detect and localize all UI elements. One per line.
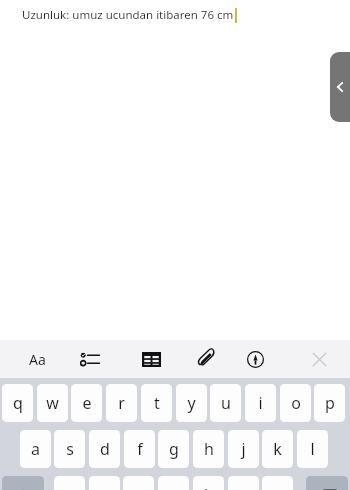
staticText: a [31,438,40,460]
button[interactable]: Shift [2,476,44,490]
button[interactable]: d [89,430,120,468]
staticText: o [291,392,301,414]
button[interactable]: n [228,476,259,490]
button[interactable]: Table [136,344,166,374]
button[interactable]: Markup [240,344,270,374]
button[interactable]: x [89,476,120,490]
staticText: f [137,438,143,460]
staticText: b [204,484,214,490]
button[interactable]: o [280,384,311,422]
button[interactable]: p [314,384,345,422]
staticText: h [204,438,214,460]
button[interactable]: Close [304,344,334,374]
button[interactable]: a [20,430,51,468]
button[interactable]: u [210,384,241,422]
staticText: Aa [29,350,46,369]
staticText: g [169,438,179,460]
button[interactable]: i [245,384,276,422]
staticText: j [241,438,246,460]
staticText: p [325,392,335,414]
button[interactable]: k [262,430,293,468]
staticText: w [46,392,59,414]
staticText: t [154,392,160,414]
button[interactable]: r [106,384,137,422]
button[interactable]: h [193,430,224,468]
button[interactable]: Attach [190,344,220,374]
button[interactable]: g [158,430,189,468]
button[interactable]: b [193,476,224,490]
staticText: d [100,438,110,460]
staticText: r [118,392,125,414]
button[interactable]: m [262,476,293,490]
staticText: e [82,392,92,414]
staticText: k [273,438,282,460]
button[interactable]: y [176,384,207,422]
button[interactable]: z [54,476,85,490]
button[interactable]: s [54,430,85,468]
button[interactable]: f [124,430,155,468]
button[interactable]: w [37,384,68,422]
staticText: s [66,438,74,460]
staticText: Uzunluk: umuz ucundan itibaren 76 cm [22,7,234,23]
button[interactable]: Backspace [306,476,348,490]
button[interactable]: q [2,384,33,422]
button[interactable]: l [297,430,328,468]
staticText: q [13,392,23,414]
button[interactable]: j [228,430,259,468]
staticText: y [187,392,196,414]
staticText: i [258,392,263,414]
button[interactable]: e [71,384,102,422]
button[interactable]: v [158,476,189,490]
button[interactable]: c [123,476,154,490]
staticText: u [221,392,231,414]
staticText: l [310,438,315,460]
button[interactable]: Text format [22,344,52,374]
button[interactable]: Show sidebar [330,52,350,122]
button[interactable]: Checklist [75,344,105,374]
button[interactable]: t [141,384,172,422]
